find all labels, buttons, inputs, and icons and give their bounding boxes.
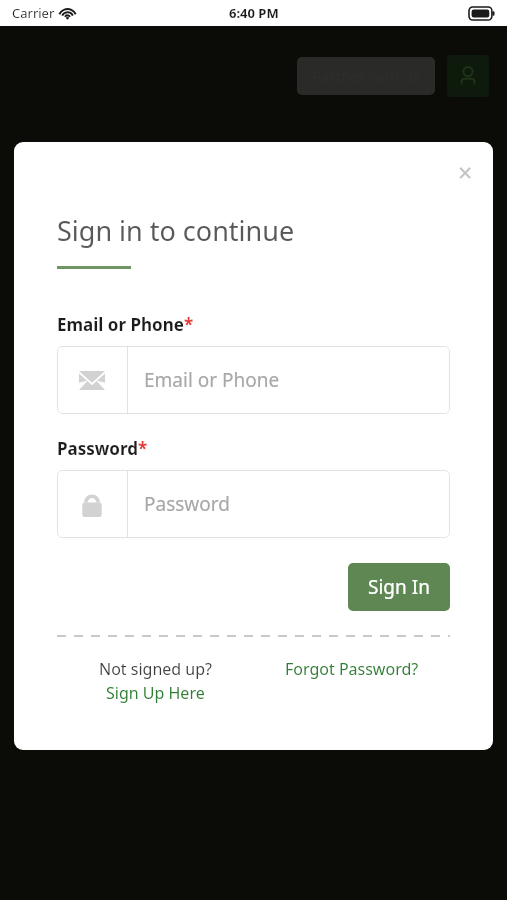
staticText: Password — [57, 437, 138, 460]
staticText: × — [458, 155, 473, 189]
button[interactable]: Forgot Password? — [253, 658, 450, 680]
staticText: Email or Phone — [144, 367, 280, 393]
button[interactable]: Sign Up Here — [106, 682, 205, 704]
staticText: Carrier — [12, 4, 55, 22]
staticText: Forgot Password? — [285, 658, 419, 680]
staticText: Email or Phone — [57, 313, 184, 336]
staticText: * — [138, 437, 148, 460]
button[interactable]: Account — [447, 55, 489, 97]
button[interactable]: Password — [57, 470, 450, 538]
staticText: Sign In — [368, 574, 430, 600]
staticText: 6:40 PM — [229, 4, 279, 22]
staticText: * — [184, 313, 194, 336]
staticText: Sign in to continue — [57, 212, 295, 249]
staticText: Password — [144, 491, 230, 517]
staticText: Sign Up Here — [106, 682, 205, 704]
staticText: Not signed up? — [99, 658, 212, 680]
button[interactable]: Sign In — [348, 563, 450, 611]
button[interactable]: Email or Phone — [57, 346, 450, 414]
button[interactable]: Close — [447, 154, 483, 190]
